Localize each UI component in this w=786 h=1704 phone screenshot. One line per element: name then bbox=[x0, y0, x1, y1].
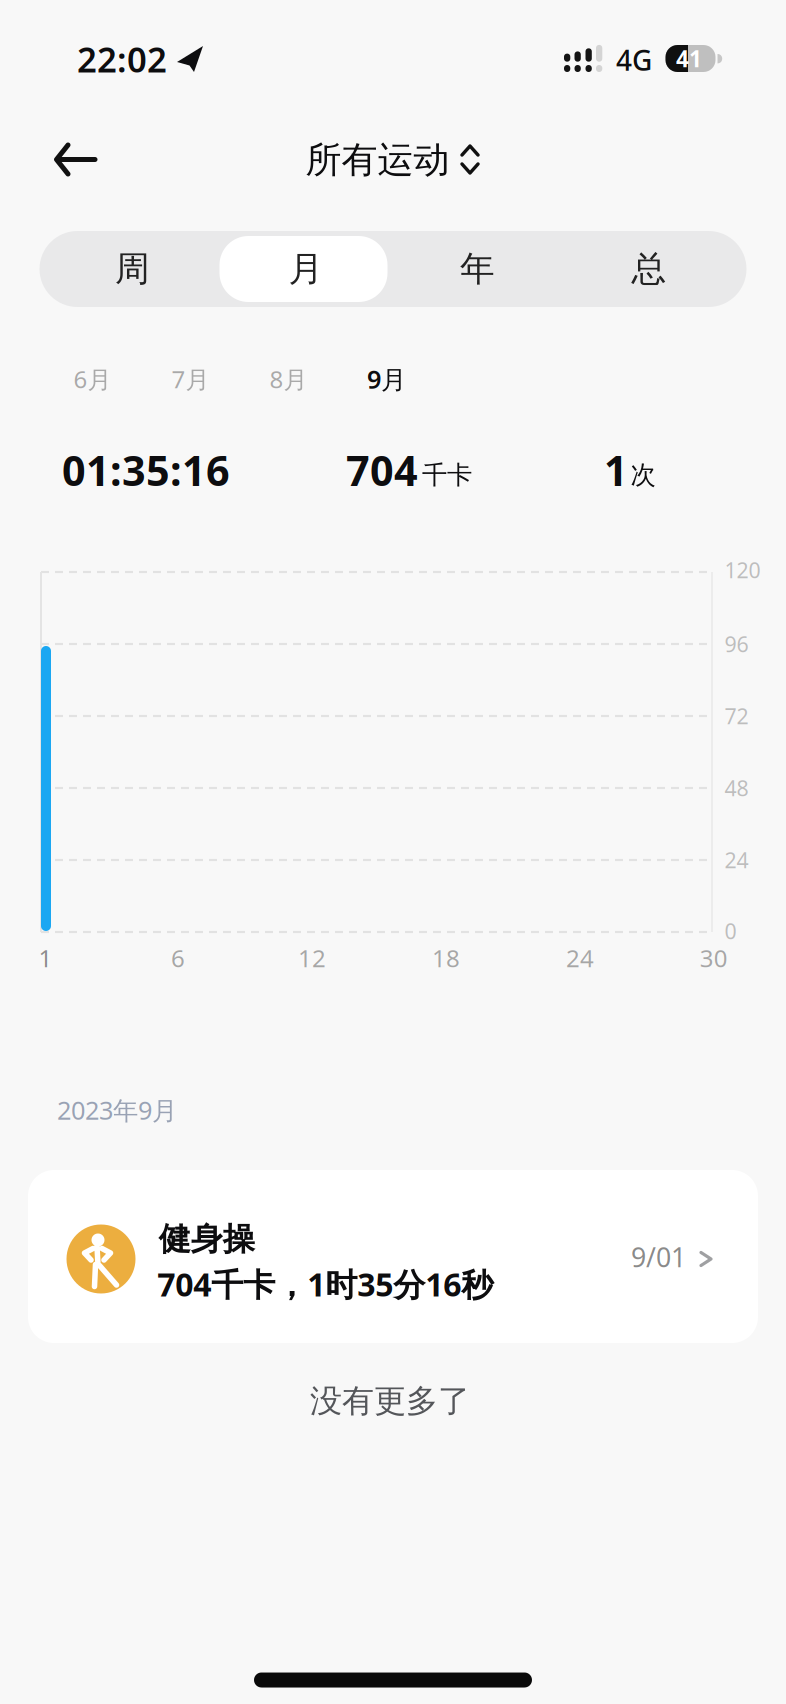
button[interactable]: 年 bbox=[393, 231, 561, 307]
staticText: 所有运动 bbox=[305, 138, 449, 182]
staticText: 月 bbox=[288, 248, 323, 290]
staticText: 总 bbox=[631, 248, 666, 290]
staticText: 千卡 bbox=[422, 459, 472, 490]
staticText: 没有更多了 bbox=[310, 1381, 470, 1421]
staticText: 次 bbox=[630, 459, 655, 490]
button[interactable]: 周 bbox=[48, 231, 216, 307]
button[interactable]: 月 bbox=[222, 231, 390, 307]
staticText: 18 bbox=[432, 942, 460, 974]
staticText: 1 bbox=[38, 942, 52, 974]
button[interactable]: 所有运动 bbox=[238, 118, 538, 202]
button[interactable]: 6月 bbox=[52, 351, 132, 407]
staticText: 健身操 bbox=[159, 1219, 255, 1259]
staticText: 12 bbox=[298, 942, 326, 974]
button[interactable]: 总 bbox=[565, 231, 733, 307]
staticText: 72 bbox=[725, 702, 749, 730]
staticText: 6 bbox=[171, 942, 185, 974]
button[interactable]: 8月 bbox=[248, 351, 328, 407]
staticText: 41 bbox=[676, 43, 702, 73]
staticText: 周 bbox=[115, 248, 150, 290]
button[interactable]: 返回 bbox=[32, 114, 122, 204]
staticText: 01:35:16 bbox=[62, 443, 230, 497]
staticText: 22:02 bbox=[77, 36, 167, 82]
staticText: 30 bbox=[700, 942, 728, 974]
staticText: 9月 bbox=[367, 362, 406, 396]
staticText: 8月 bbox=[269, 363, 307, 395]
staticText: 9/01 bbox=[631, 1239, 686, 1275]
staticText: 2023年9月 bbox=[57, 1093, 177, 1127]
staticText: 48 bbox=[725, 774, 749, 802]
staticText: 4G bbox=[616, 41, 652, 79]
staticText: 年 bbox=[460, 248, 495, 290]
staticText: 6月 bbox=[73, 363, 111, 395]
staticText: 7月 bbox=[171, 363, 209, 395]
button[interactable]: 9月 bbox=[346, 351, 426, 407]
staticText: 24 bbox=[566, 942, 594, 974]
staticText: 120 bbox=[725, 556, 761, 584]
staticText: 704千卡，1时35分16秒 bbox=[157, 1263, 493, 1305]
staticText: 704 bbox=[346, 443, 418, 497]
staticText: 1 bbox=[604, 443, 628, 497]
button[interactable]: 健身操 bbox=[28, 1170, 758, 1343]
button[interactable]: 7月 bbox=[150, 351, 230, 407]
staticText: 96 bbox=[725, 630, 749, 658]
staticText: 0 bbox=[725, 917, 737, 945]
staticText: 24 bbox=[725, 846, 749, 874]
